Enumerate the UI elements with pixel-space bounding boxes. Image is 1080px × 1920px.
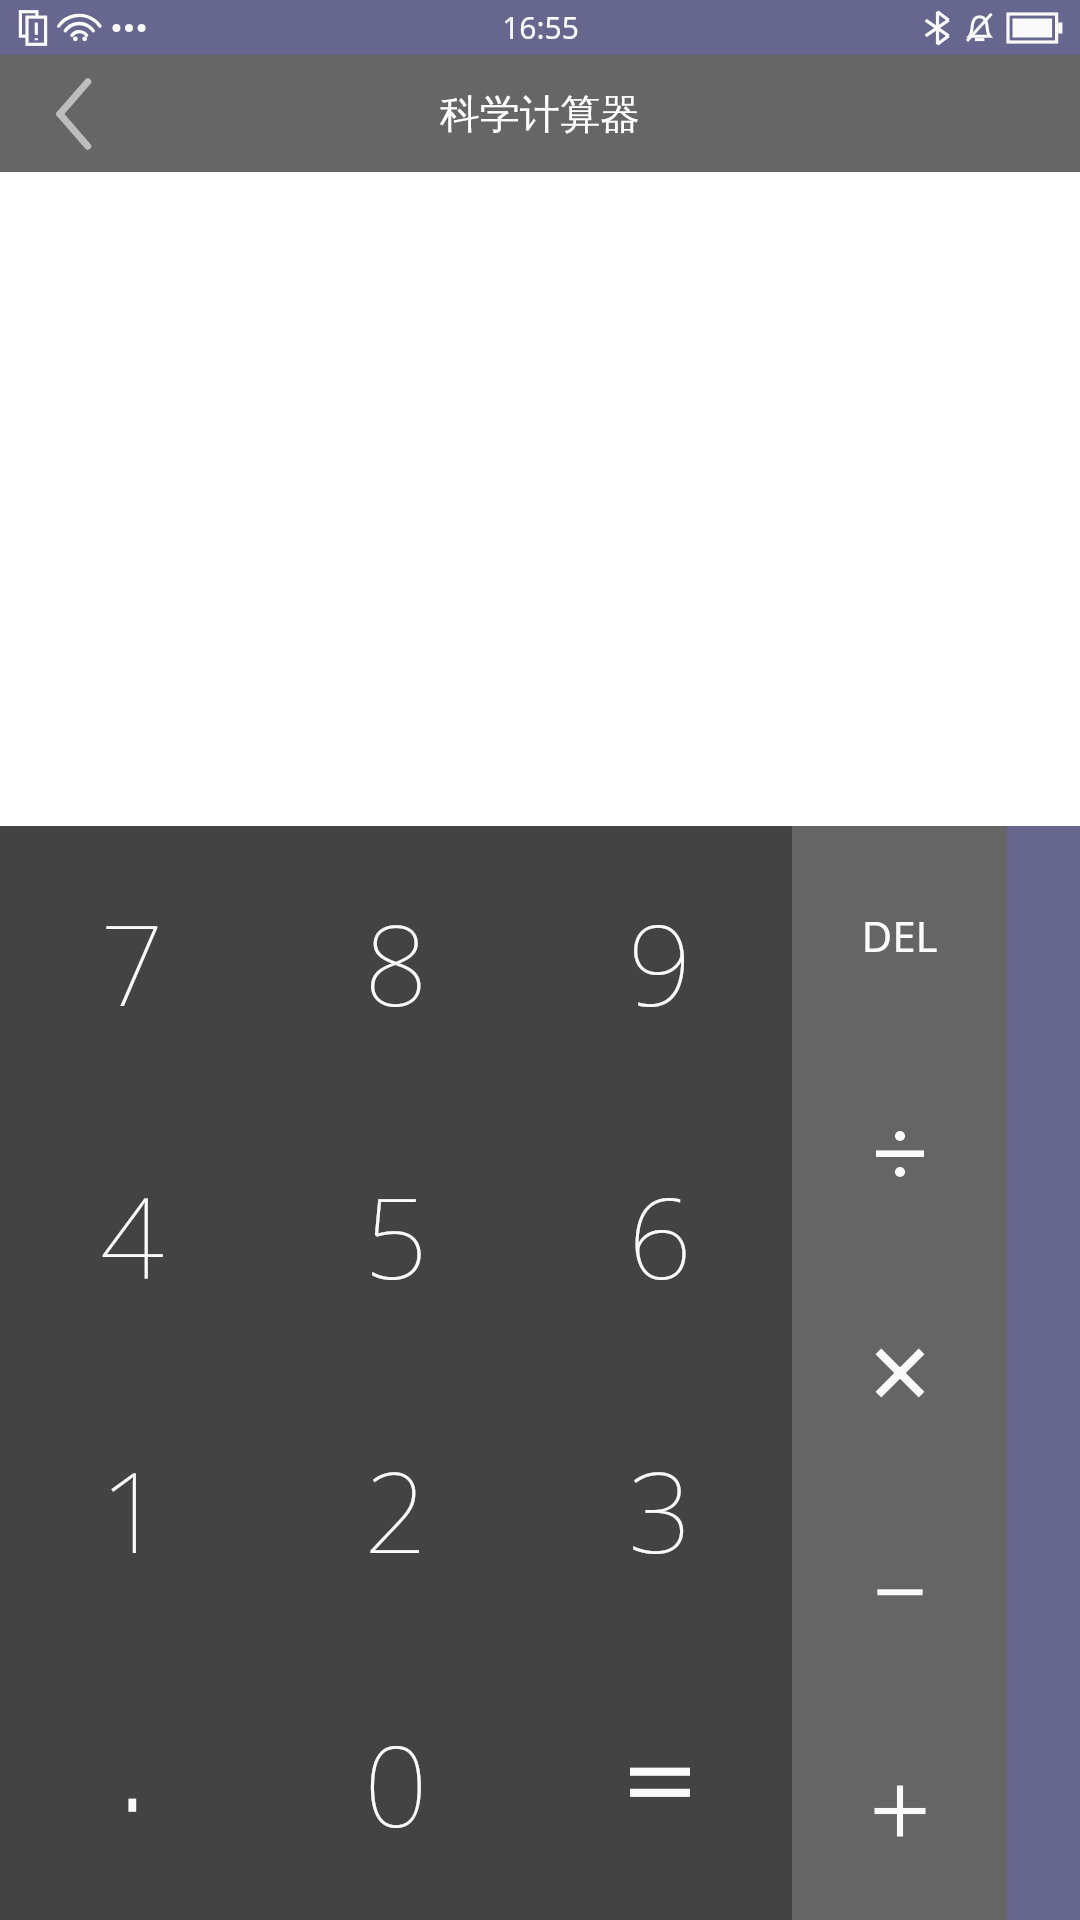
staticText: 8 (364, 886, 428, 1039)
button[interactable]: Subtract (792, 1482, 1007, 1701)
staticText: DEL (861, 907, 938, 964)
button[interactable]: 3 (528, 1372, 792, 1646)
button[interactable]: 9 (528, 826, 792, 1099)
button[interactable]: Divide (792, 1044, 1007, 1263)
button[interactable]: Back (0, 55, 150, 172)
button[interactable]: 0 (264, 1646, 528, 1920)
staticText: 1 (100, 1433, 164, 1586)
staticText: 4 (100, 1159, 164, 1312)
button[interactable]: 6 (528, 1099, 792, 1372)
staticText: 科学计算器 (440, 89, 640, 139)
staticText: 0 (364, 1707, 428, 1860)
button[interactable]: 2 (264, 1372, 528, 1646)
staticText: 2 (364, 1433, 428, 1586)
button[interactable]: DEL (792, 826, 1007, 1044)
staticText: 9 (628, 886, 692, 1039)
button[interactable]: 4 (0, 1099, 264, 1372)
button[interactable]: 1 (0, 1372, 264, 1646)
button[interactable]: 7 (0, 826, 264, 1099)
button[interactable]: Add (792, 1701, 1007, 1920)
staticText: 7 (100, 886, 164, 1039)
button[interactable] (0, 1646, 264, 1920)
button[interactable]: 8 (264, 826, 528, 1099)
staticText: 6 (628, 1159, 692, 1312)
staticText: 16:55 (502, 7, 579, 48)
button[interactable] (528, 1646, 792, 1920)
staticText: 5 (364, 1159, 428, 1312)
button[interactable]: 5 (264, 1099, 528, 1372)
button[interactable]: Multiply (792, 1263, 1007, 1482)
staticText: 3 (628, 1433, 692, 1586)
